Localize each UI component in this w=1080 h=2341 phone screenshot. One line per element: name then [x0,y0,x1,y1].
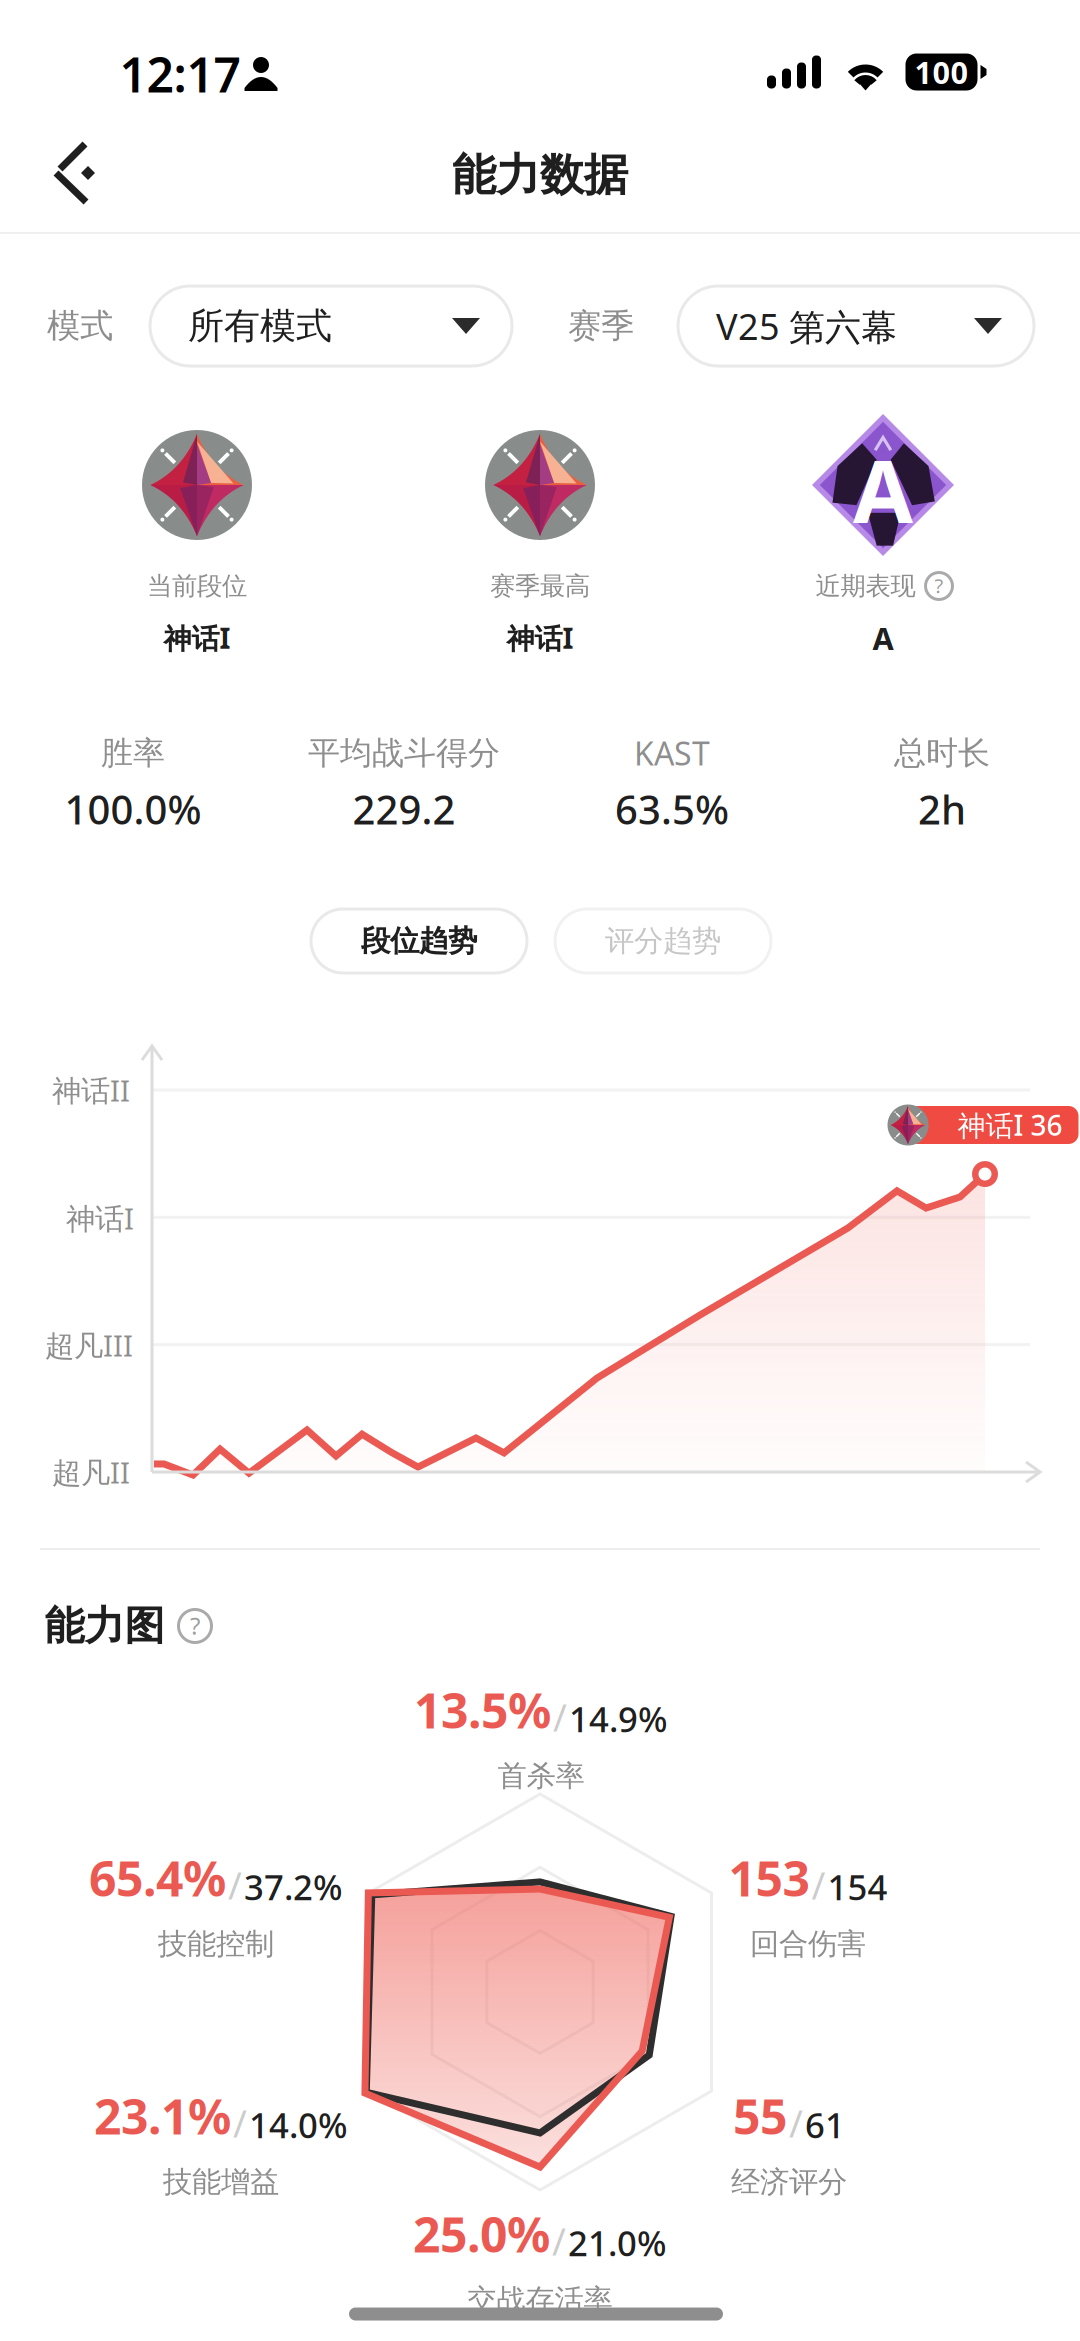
staticText: 超凡III [45,1325,133,1364]
button[interactable]: 段位趋势 [311,909,527,973]
staticText: 所有模式 [188,304,332,348]
staticText: / [553,1692,567,1742]
staticText: 段位趋势 [361,923,477,959]
staticText: 153 [728,1846,809,1910]
staticText: 能力图 [44,1601,164,1650]
staticText: ? [190,1609,200,1641]
staticText: / [789,2098,803,2148]
staticText: A [853,432,913,547]
staticText: 超凡II [52,1452,130,1491]
staticText: 14.9% [569,1696,668,1742]
staticText: 赛季最高 [490,570,590,601]
staticText: 经济评分 [731,2164,847,2200]
staticText: 100.0% [64,782,201,835]
staticText: 12:17 [119,42,240,106]
staticText: 神话II [52,1070,130,1109]
staticText: 37.2% [244,1864,343,1910]
staticText: 神话I [506,619,573,657]
staticText: 14.0% [249,2102,348,2148]
staticText: 交战存活率 [467,2282,612,2318]
staticText: 技能控制 [158,1926,274,1962]
staticText: / [811,1860,825,1910]
staticText: ? [934,572,943,599]
button[interactable]: 所有模式 [150,286,512,366]
staticText: 能力数据 [452,148,628,202]
staticText: / [233,2098,247,2148]
staticText: 近期表现 [815,570,915,601]
staticText: 2h [918,782,966,835]
staticText: 23.1% [94,2084,231,2148]
button[interactable]: Back [23,118,133,228]
staticText: 回合伤害 [750,1926,866,1962]
staticText: 100 [914,52,968,92]
staticText: 技能增益 [163,2164,279,2200]
staticText: 13.5% [414,1678,551,1742]
staticText: V25 第六幕 [716,302,897,350]
staticText: 当前段位 [147,570,247,601]
staticText: 首杀率 [497,1758,584,1794]
button[interactable]: 评分趋势 [555,909,771,973]
staticText: 总时长 [894,733,990,773]
staticText: / [228,1860,242,1910]
staticText: 神话I [66,1198,134,1237]
staticText: 平均战斗得分 [308,733,500,773]
staticText: 胜率 [101,733,165,773]
staticText: 神话I [163,619,230,657]
staticText: 229.2 [352,782,455,835]
staticText: 模式 [47,305,113,346]
button[interactable]: V25 第六幕 [678,286,1034,366]
staticText: KAST [634,732,710,774]
staticText: 赛季 [568,305,634,346]
staticText: 神话I 36 [957,1106,1062,1144]
staticText: 55 [733,2084,787,2148]
staticText: 21.0% [568,2220,667,2266]
staticText: A [872,618,893,658]
staticText: 61 [805,2102,845,2148]
staticText: / [552,2216,566,2266]
staticText: 25.0% [413,2202,550,2266]
staticText: 154 [827,1864,887,1910]
staticText: 63.5% [615,782,729,835]
staticText: 评分趋势 [605,923,721,959]
staticText: 65.4% [89,1846,226,1910]
